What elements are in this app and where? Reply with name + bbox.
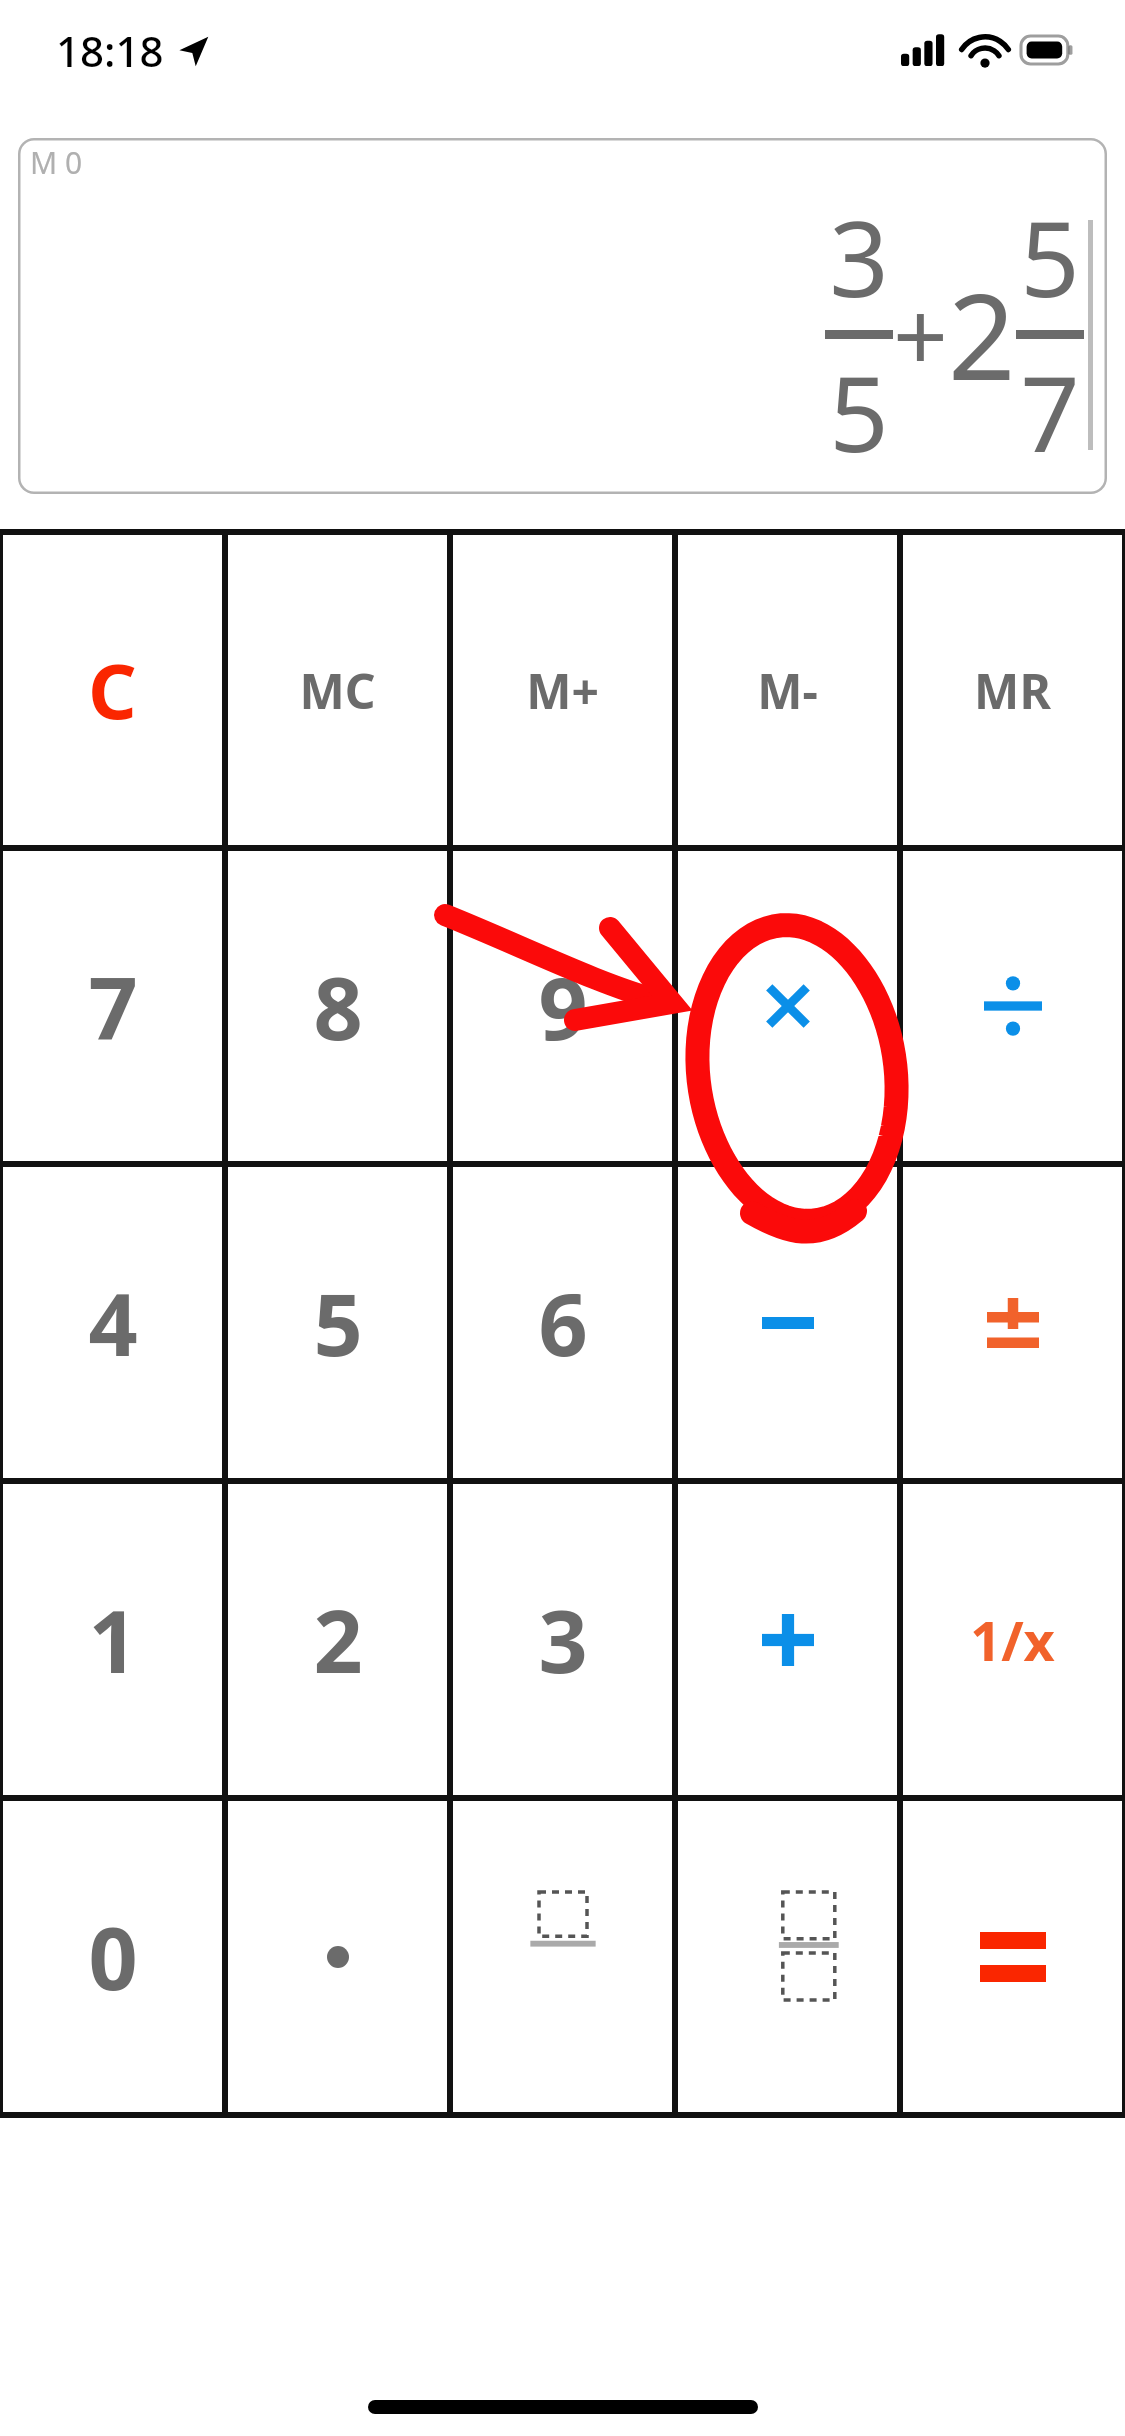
button[interactable]: M+ [453,535,672,845]
button[interactable]: C [3,535,222,845]
button[interactable]: 0 [3,1801,222,2112]
button[interactable]: Equals [903,1801,1122,2112]
button[interactable]: 5 [228,1167,447,1478]
button[interactable]: Multiply [678,851,897,1161]
staticText: M 0 [30,142,83,183]
staticText: C [88,638,137,742]
button[interactable]: 4 [3,1167,222,1478]
button[interactable]: 1 [3,1484,222,1795]
staticText: 8 [313,948,363,1065]
button[interactable]: M- [678,535,897,845]
staticText: 7 [1020,341,1080,483]
button[interactable]: Minus [678,1167,897,1478]
staticText: M+ [526,658,599,723]
button[interactable]: MC [228,535,447,845]
button[interactable]: Fraction [453,1801,672,2112]
staticText: 1 [88,1581,138,1698]
staticText: 6 [538,1264,588,1381]
button[interactable]: Decimal point [228,1801,447,2112]
button[interactable]: 8 [228,851,447,1161]
button[interactable]: Plus minus [903,1167,1122,1478]
staticText: 5 [1020,186,1080,328]
staticText: M- [757,658,818,723]
staticText: MC [299,658,376,723]
button[interactable]: M 0 [18,138,1107,494]
button[interactable]: 1/x [903,1484,1122,1795]
staticText: 2 [948,254,1016,415]
staticText: MR [974,658,1051,723]
staticText: 3 [538,1581,588,1698]
staticText: 5 [313,1264,363,1381]
button[interactable]: 6 [453,1167,672,1478]
staticText: 0 [88,1898,138,2015]
staticText: 18:18 [56,22,164,79]
staticText: 1/x [970,1603,1055,1677]
staticText: 3 [829,186,889,328]
button[interactable]: 7 [3,851,222,1161]
staticText: + [893,269,948,400]
staticText: 9 [538,948,588,1065]
staticText: 4 [88,1264,138,1381]
button[interactable]: 3 [453,1484,672,1795]
button[interactable]: MR [903,535,1122,845]
button[interactable]: Mixed number [678,1801,897,2112]
staticText: 5 [829,341,889,483]
button[interactable]: Divide [903,851,1122,1161]
button[interactable]: 2 [228,1484,447,1795]
button[interactable]: 9 [453,851,672,1161]
staticText: 7 [88,948,138,1065]
button[interactable]: Plus [678,1484,897,1795]
staticText: 2 [313,1581,363,1698]
